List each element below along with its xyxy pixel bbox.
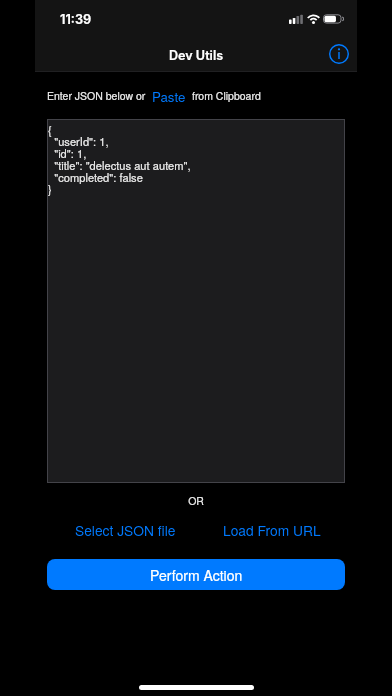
button[interactable]: Perform Action: [47, 559, 345, 590]
staticText: 11:39: [60, 12, 92, 27]
staticText: Enter JSON below or: [47, 88, 146, 103]
staticText: Select JSON file: [75, 520, 176, 540]
button[interactable]: Load From URL: [223, 520, 345, 540]
staticText: Dev Utils: [169, 48, 224, 63]
button[interactable]: Select JSON file: [47, 520, 176, 540]
staticText: Paste: [152, 87, 186, 103]
staticText: { "userId": 1, "id": 1, "title": "delect…: [48, 122, 191, 198]
button[interactable]: Paste: [146, 87, 192, 103]
staticText: from Clipboard: [192, 88, 261, 103]
staticText: Load From URL: [223, 520, 321, 540]
staticText: OR: [35, 493, 357, 508]
button[interactable]: Info: [327, 42, 351, 66]
staticText: Perform Action: [150, 565, 243, 585]
